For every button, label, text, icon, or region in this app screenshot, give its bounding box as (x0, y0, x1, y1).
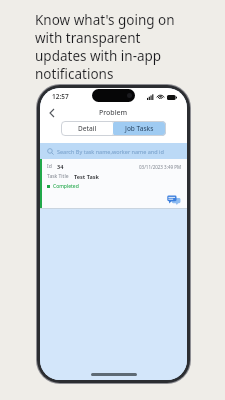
staticText: with transparent (35, 29, 141, 47)
staticText: Detail (78, 124, 97, 133)
staticText: 12:57 (52, 92, 69, 101)
staticText: Problem (99, 108, 128, 118)
staticText: Job Tasks (125, 124, 154, 133)
button[interactable]: Chat (166, 194, 181, 205)
staticText: Id (47, 163, 52, 170)
staticText: updates with in-app (35, 47, 162, 65)
button[interactable]: Id (40, 159, 187, 208)
staticText: notifications (35, 65, 114, 83)
staticText: Completed (53, 183, 79, 190)
staticText: Test Task (74, 173, 99, 180)
button[interactable]: Job Tasks (113, 121, 166, 136)
staticText: Search By task name,worker name and id (57, 148, 164, 155)
staticText: Task Title (47, 173, 69, 180)
staticText: 03/11/2023 3:49 PM (139, 164, 182, 170)
button[interactable]: Detail (61, 121, 113, 136)
staticText: Know what's going on (35, 11, 175, 29)
staticText: 34 (57, 163, 64, 170)
button[interactable]: Back (45, 106, 59, 120)
button[interactable]: Search By task name,worker name and id (40, 143, 187, 159)
